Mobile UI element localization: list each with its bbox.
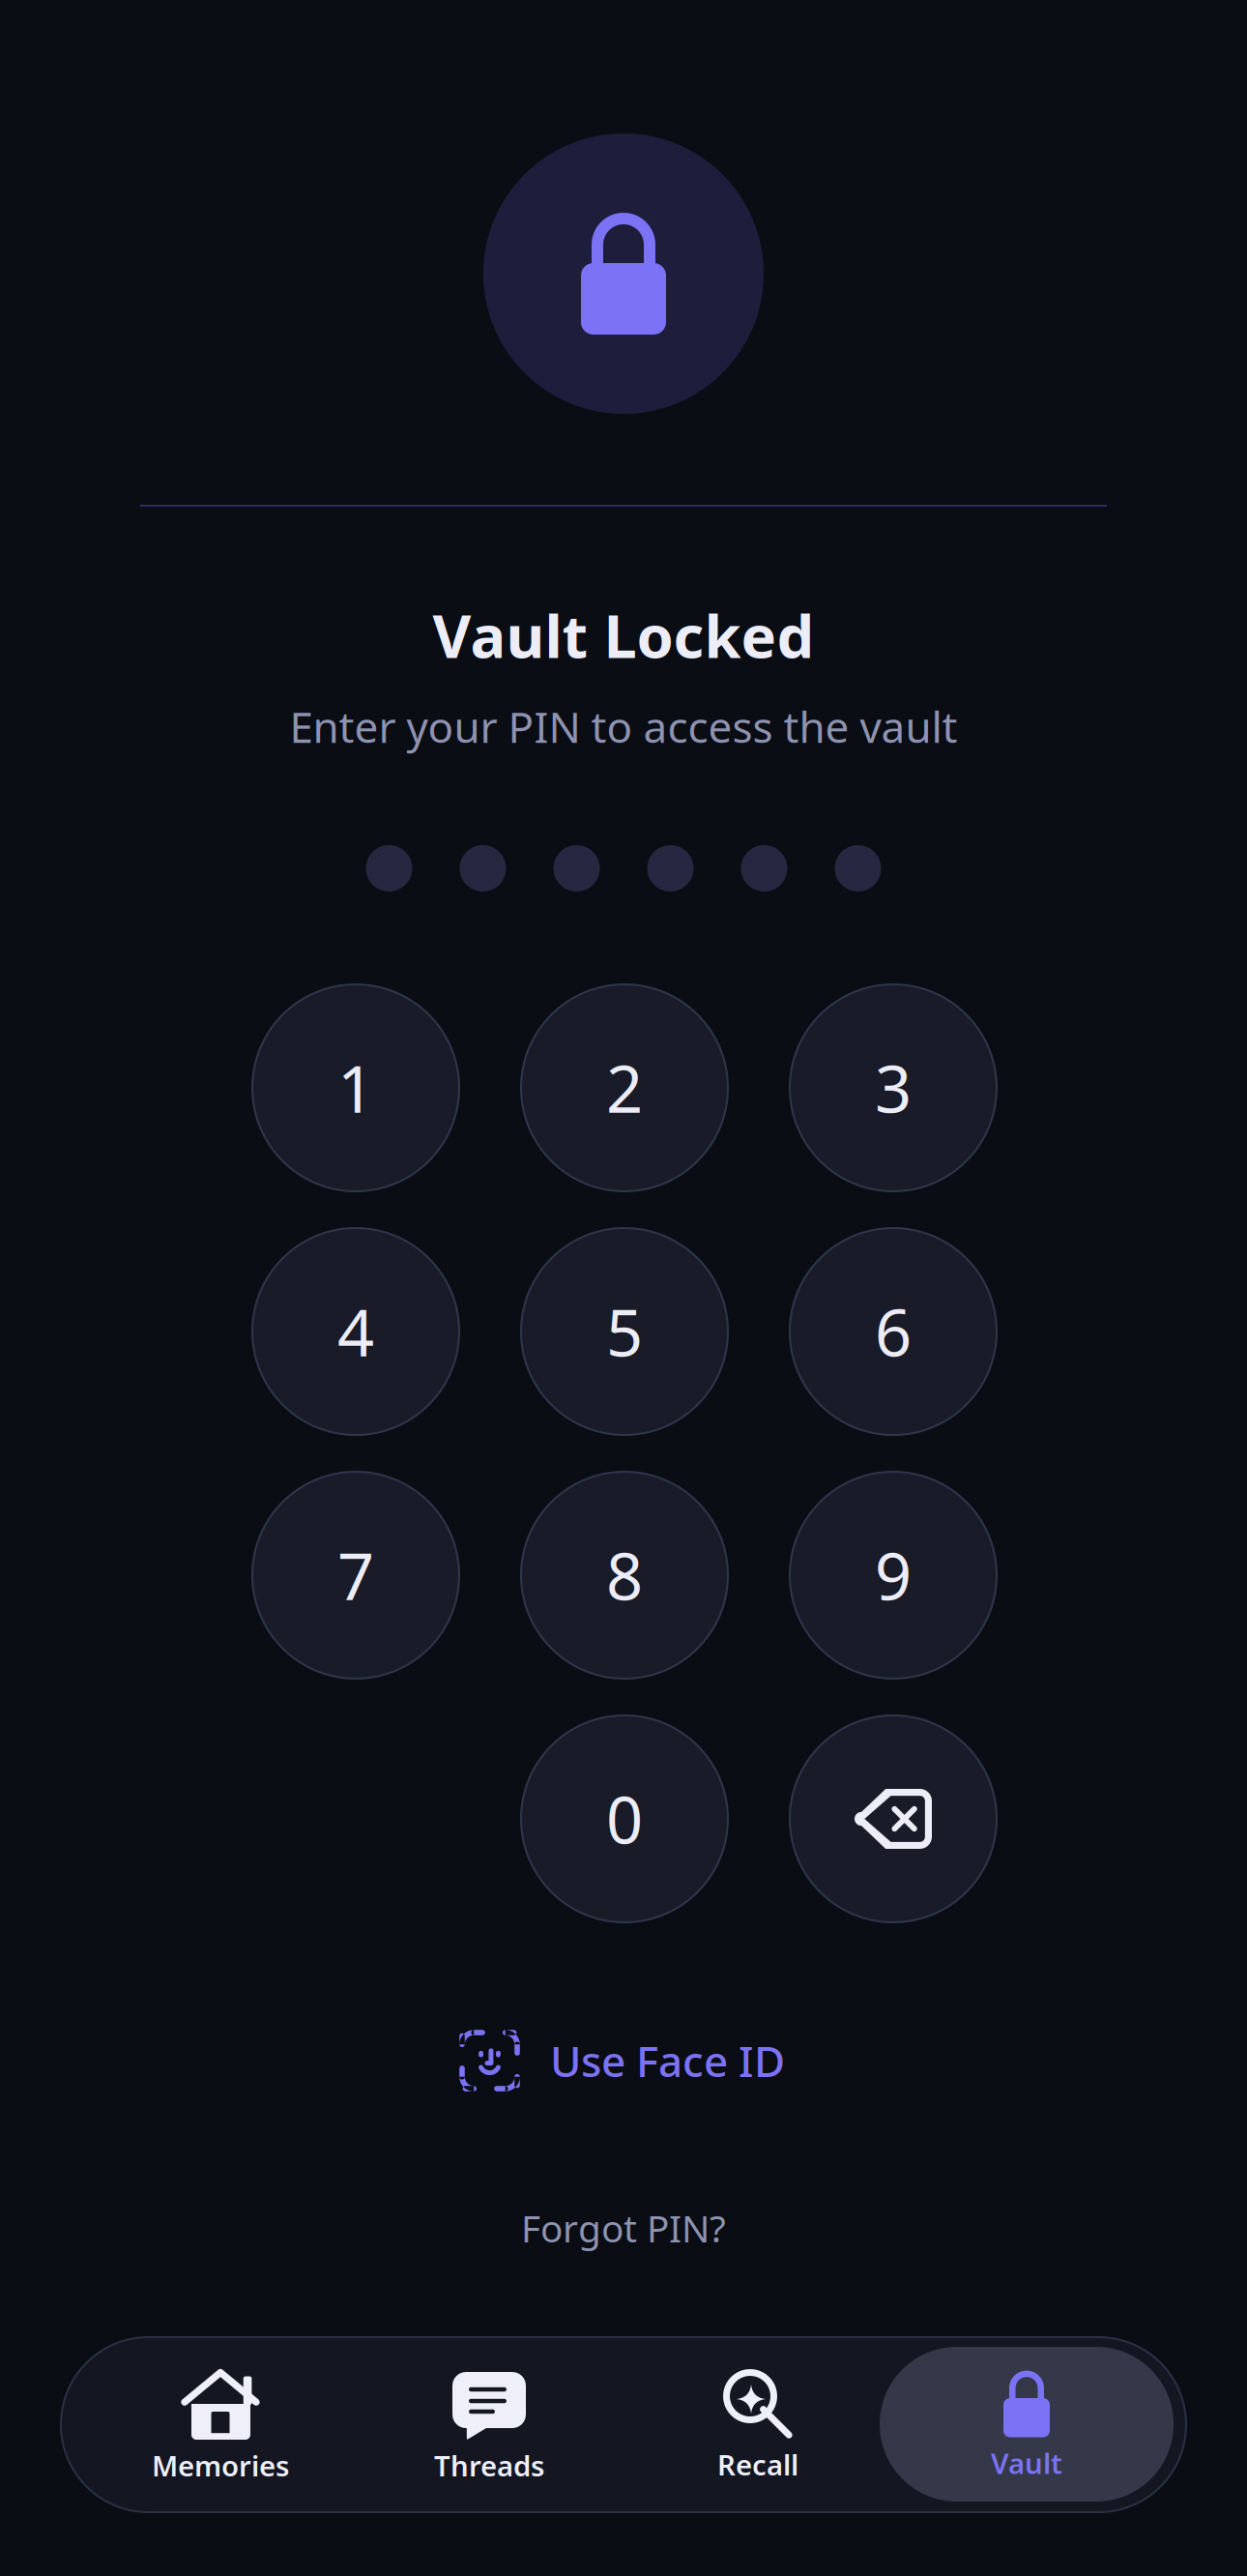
staticText: Enter your PIN to access the vault: [290, 698, 957, 755]
staticText: Vault Locked: [433, 596, 814, 674]
button[interactable]: Recall: [623, 2347, 892, 2505]
button[interactable]: 4: [252, 1228, 459, 1435]
button[interactable]: 5: [521, 1228, 728, 1435]
staticText: 2: [606, 1045, 643, 1131]
button[interactable]: 6: [790, 1228, 997, 1435]
staticText: Use Face ID: [550, 2032, 785, 2089]
staticText: Memories: [152, 2446, 289, 2484]
button[interactable]: 0: [521, 1715, 728, 1922]
staticText: 4: [337, 1289, 374, 1374]
button[interactable]: Use Face ID: [0, 2022, 1247, 2099]
staticText: Vault: [991, 2444, 1062, 2482]
button[interactable]: Forgot PIN?: [0, 2203, 1247, 2253]
button[interactable]: 3: [790, 984, 997, 1191]
button[interactable]: 1: [252, 984, 459, 1191]
button[interactable]: Memories: [86, 2347, 355, 2505]
button[interactable]: 2: [521, 984, 728, 1191]
staticText: Forgot PIN?: [521, 2203, 726, 2253]
staticText: 7: [337, 1532, 374, 1618]
button[interactable]: Delete: [790, 1715, 997, 1922]
staticText: Threads: [434, 2446, 544, 2484]
staticText: 5: [606, 1289, 643, 1374]
button[interactable]: Threads: [355, 2347, 623, 2505]
staticText: 6: [875, 1289, 912, 1374]
button[interactable]: Vault: [892, 2347, 1161, 2505]
button[interactable]: 7: [252, 1472, 459, 1679]
staticText: 8: [606, 1532, 643, 1618]
staticText: 9: [875, 1532, 912, 1618]
staticText: 1: [337, 1045, 374, 1131]
staticText: 0: [606, 1776, 643, 1862]
button[interactable]: 8: [521, 1472, 728, 1679]
staticText: Recall: [717, 2445, 798, 2483]
staticText: 3: [875, 1045, 912, 1131]
button[interactable]: 9: [790, 1472, 997, 1679]
